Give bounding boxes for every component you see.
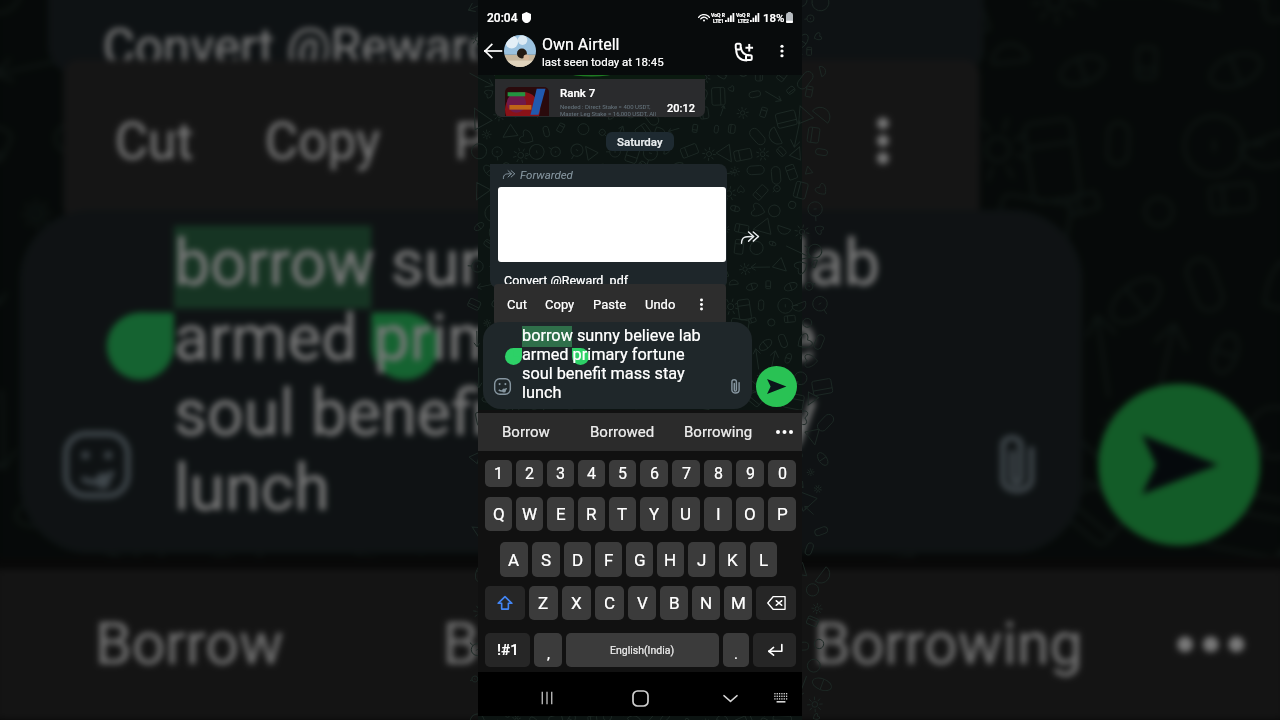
button[interactable]: English(India)	[566, 633, 719, 667]
button[interactable]: Send	[1098, 384, 1260, 546]
staticText: 2	[525, 464, 534, 483]
staticText: 5	[618, 464, 627, 483]
staticText: H	[664, 550, 677, 570]
button[interactable]: Paste	[593, 284, 627, 325]
staticText: 1	[494, 464, 503, 483]
button[interactable]: Attach	[968, 415, 1063, 510]
button[interactable]: Copy	[265, 60, 383, 222]
staticText: Convert @Reward pdf	[103, 16, 597, 76]
button[interactable]: Back	[478, 36, 508, 66]
button[interactable]: E	[547, 497, 574, 531]
button[interactable]: Z	[529, 586, 558, 620]
staticText: Convert @Reward pdf	[504, 273, 629, 288]
button[interactable]: Send	[756, 366, 797, 407]
button[interactable]: V	[628, 586, 656, 620]
button[interactable]: S	[532, 542, 560, 577]
staticText: Undo	[645, 297, 676, 312]
button[interactable]: 4	[578, 460, 605, 487]
button[interactable]: Home	[625, 683, 655, 713]
button[interactable]: 6	[640, 460, 668, 487]
button[interactable]: W	[516, 497, 543, 531]
button[interactable]: More options	[767, 36, 797, 66]
staticText: Own Airtell	[542, 35, 620, 54]
button[interactable]: K	[719, 542, 746, 577]
button[interactable]: Backspace	[756, 586, 796, 620]
button[interactable]: Shift	[485, 586, 525, 620]
staticText: Needed : Direct Stake = 400 USDT,	[560, 103, 651, 110]
staticText: borrow sunny believe lab armed primary f…	[174, 226, 881, 526]
button[interactable]: R	[578, 497, 605, 531]
button[interactable]: M	[724, 586, 752, 620]
staticText: A	[508, 550, 520, 570]
button[interactable]: C	[595, 586, 624, 620]
button[interactable]: Borrow	[478, 413, 574, 451]
staticText: R	[586, 504, 597, 524]
staticText: Borrowed	[590, 423, 655, 441]
button[interactable]: B	[660, 586, 688, 620]
button[interactable]: Y	[640, 497, 668, 531]
button[interactable]: Own Airtell	[542, 35, 712, 68]
button[interactable]: 7	[672, 460, 700, 487]
button[interactable]: 8	[704, 460, 732, 487]
button[interactable]: More suggestions	[766, 413, 802, 451]
button[interactable]: 1	[485, 460, 512, 487]
staticText: 0	[778, 464, 787, 483]
button[interactable]: !#1	[485, 633, 530, 667]
button[interactable]: Enter	[753, 633, 796, 667]
button[interactable]: More	[694, 284, 708, 325]
staticText: L	[759, 550, 769, 570]
button[interactable]: .	[723, 633, 749, 667]
button[interactable]: Borrowing	[758, 569, 1138, 719]
button[interactable]: J	[688, 542, 715, 577]
button[interactable]: Borrowing	[670, 413, 766, 451]
button[interactable]: 2	[516, 460, 543, 487]
button[interactable]: P	[768, 497, 796, 531]
button[interactable]: 0	[768, 460, 796, 487]
button[interactable]: 9	[736, 460, 764, 487]
button[interactable]: D	[564, 542, 591, 577]
button[interactable]: Borrow	[0, 569, 379, 719]
staticText: S	[541, 550, 552, 570]
button[interactable]: Recents	[532, 683, 562, 713]
button[interactable]: F	[595, 542, 622, 577]
button[interactable]: Paste	[454, 60, 589, 222]
button[interactable]: L	[750, 542, 777, 577]
button[interactable]: Emoji	[490, 374, 514, 398]
staticText: ,	[547, 645, 550, 663]
button[interactable]: G	[626, 542, 653, 577]
staticText: N	[700, 593, 713, 613]
staticText: E	[556, 504, 566, 524]
button[interactable]: Emoji	[47, 415, 142, 510]
button[interactable]: I	[704, 497, 732, 531]
button[interactable]: Attach	[723, 374, 747, 398]
button[interactable]: More suggestions	[1138, 569, 1280, 719]
button[interactable]: H	[657, 542, 684, 577]
button[interactable]: A	[500, 542, 528, 577]
button[interactable]: N	[692, 586, 720, 620]
staticText: C	[604, 593, 616, 613]
button[interactable]: More	[853, 60, 909, 222]
button[interactable]: Undo	[645, 284, 676, 325]
staticText: Undo	[660, 111, 782, 170]
staticText: I	[716, 504, 721, 524]
button[interactable]: Switch keyboard	[766, 683, 796, 713]
staticText: VoQ R	[711, 12, 725, 18]
button[interactable]: 3	[547, 460, 574, 487]
button[interactable]: Call	[728, 36, 760, 68]
button[interactable]: Hide keyboard	[715, 683, 745, 713]
button[interactable]: 5	[609, 460, 636, 487]
button[interactable]: O	[736, 497, 764, 531]
button[interactable]: U	[672, 497, 700, 531]
button[interactable]: Borrowed	[574, 413, 670, 451]
button[interactable]: Borrowed	[379, 569, 758, 719]
button[interactable]: Q	[485, 497, 512, 531]
button[interactable]: Copy	[545, 284, 575, 325]
button[interactable]: Cut	[507, 284, 527, 325]
staticText: J	[697, 550, 707, 570]
staticText: Master Leg Stake = 16,000 USDT, All	[560, 110, 657, 117]
button[interactable]: ,	[534, 633, 562, 667]
button[interactable]: T	[609, 497, 636, 531]
button[interactable]: X	[562, 586, 591, 620]
button[interactable]: Cut	[115, 60, 194, 222]
button[interactable]: Undo	[660, 60, 782, 222]
